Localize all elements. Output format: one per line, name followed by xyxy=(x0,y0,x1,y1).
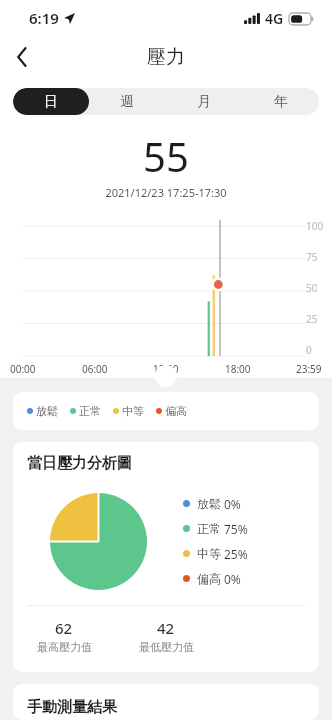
staticText: 中等 xyxy=(197,546,221,561)
staticText: 6:19 xyxy=(29,8,59,28)
staticText: 42 xyxy=(157,618,175,638)
button[interactable]: 42 xyxy=(115,618,217,654)
staticText: 0 xyxy=(306,343,312,357)
staticText: 23:59 xyxy=(296,362,322,376)
staticText: 月 xyxy=(197,93,211,111)
staticText: 75% xyxy=(224,521,248,537)
button[interactable]: Drag handle xyxy=(155,365,177,387)
staticText: 當日壓力分析圖 xyxy=(27,454,132,473)
staticText: 最高壓力值 xyxy=(37,640,92,654)
staticText: 25 xyxy=(306,312,318,326)
staticText: 18:00 xyxy=(225,362,251,376)
staticText: 06:00 xyxy=(82,362,108,376)
button[interactable]: Back xyxy=(0,36,44,78)
staticText: 12:00 xyxy=(153,362,179,376)
staticText: 日 xyxy=(44,93,58,111)
staticText: 偏高 xyxy=(197,571,221,586)
button[interactable]: 放鬆 xyxy=(13,392,319,430)
button[interactable]: 月 xyxy=(165,88,242,115)
staticText: 正常 xyxy=(79,404,101,418)
staticText: 中等 xyxy=(122,404,144,418)
staticText: 62 xyxy=(55,618,73,638)
button[interactable]: 62 xyxy=(13,618,115,654)
staticText: 75 xyxy=(306,250,318,264)
button[interactable]: 日 xyxy=(13,88,89,115)
staticText: 100 xyxy=(306,219,324,233)
staticText: 00:00 xyxy=(10,362,36,376)
staticText: 25% xyxy=(224,546,248,562)
button[interactable]: 週 xyxy=(89,88,165,115)
staticText: 50 xyxy=(306,281,318,295)
staticText: 年 xyxy=(274,93,288,111)
staticText: 手動測量結果 xyxy=(27,698,117,717)
staticText: 偏高 xyxy=(165,404,187,418)
staticText: 2021/12/23 17:25-17:30 xyxy=(0,185,332,200)
staticText: 4G xyxy=(265,9,284,28)
staticText: 週 xyxy=(120,93,134,111)
staticText: 0% xyxy=(224,496,241,512)
staticText: 0% xyxy=(224,571,241,587)
staticText: 55 xyxy=(0,129,332,183)
staticText: 正常 xyxy=(197,521,221,536)
staticText: 壓力 xyxy=(147,45,185,69)
staticText: 最低壓力值 xyxy=(139,640,194,654)
staticText: 放鬆 xyxy=(197,496,221,511)
staticText: 放鬆 xyxy=(36,404,58,418)
button[interactable]: 年 xyxy=(242,88,319,115)
